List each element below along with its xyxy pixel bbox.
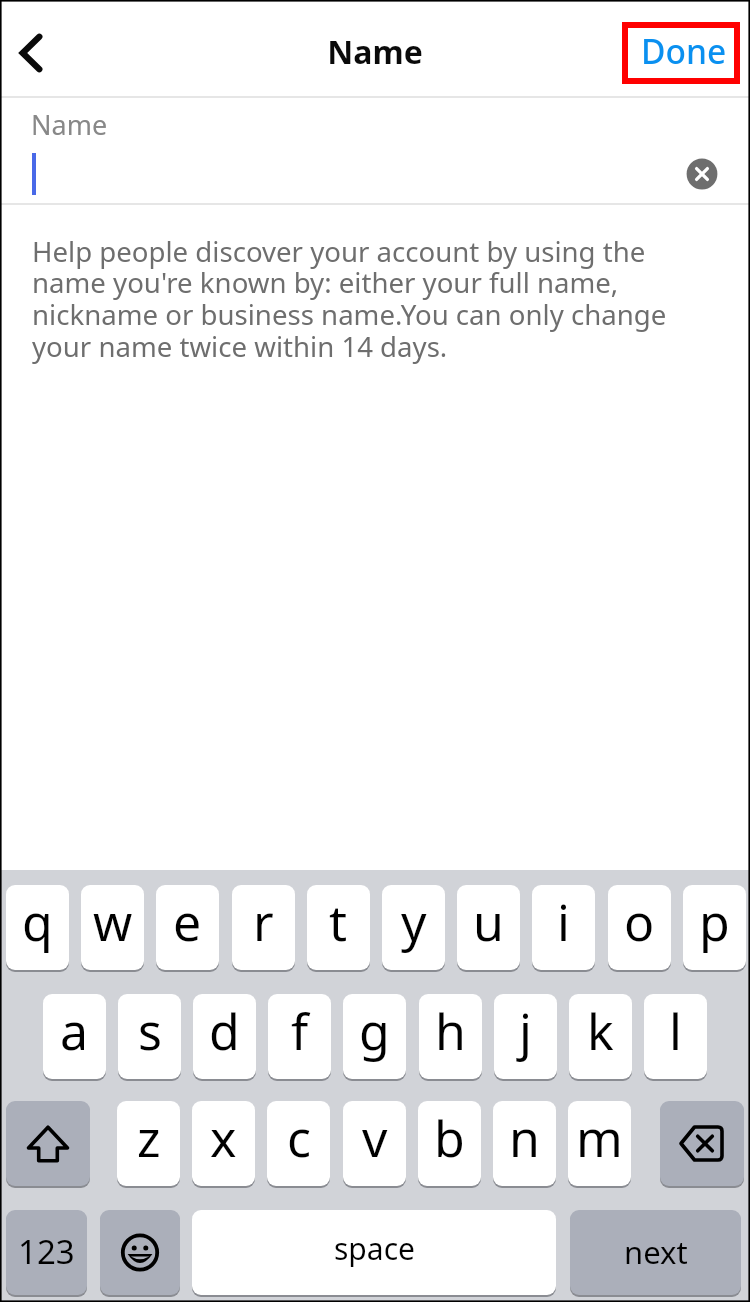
staticText: space [334, 1228, 415, 1269]
button[interactable]: p [683, 885, 746, 970]
staticText: d [209, 997, 240, 1065]
button[interactable]: Shift [6, 1101, 90, 1186]
button[interactable]: l [644, 994, 707, 1079]
staticText: s [138, 997, 162, 1065]
button[interactable]: u [457, 885, 520, 970]
staticText: Help people discover your account by usi… [32, 232, 688, 365]
button[interactable]: Clear text [679, 151, 725, 197]
button[interactable]: r [232, 885, 295, 970]
button[interactable]: d [193, 994, 256, 1079]
staticText: a [60, 997, 89, 1065]
button[interactable]: n [493, 1101, 556, 1186]
button[interactable]: i [532, 885, 595, 970]
staticText: z [137, 1104, 161, 1172]
button[interactable]: next [570, 1210, 741, 1295]
staticText: p [699, 888, 730, 956]
staticText: c [287, 1104, 311, 1172]
button[interactable]: m [568, 1101, 631, 1186]
button[interactable]: x [192, 1101, 255, 1186]
button[interactable]: 123 [6, 1210, 87, 1295]
staticText: k [587, 997, 614, 1065]
staticText: Done [641, 28, 727, 74]
button[interactable]: a [43, 994, 106, 1079]
staticText: i [557, 888, 570, 956]
button[interactable]: space [192, 1210, 556, 1295]
staticText: Name [0, 30, 750, 74]
button[interactable]: Backspace [660, 1101, 744, 1186]
staticText: e [173, 888, 202, 956]
staticText: v [362, 1104, 388, 1172]
button[interactable]: y [382, 885, 445, 970]
button[interactable]: v [343, 1101, 406, 1186]
button[interactable]: z [117, 1101, 180, 1186]
button[interactable]: s [118, 994, 181, 1079]
button[interactable]: b [418, 1101, 481, 1186]
staticText: y [401, 888, 427, 956]
button[interactable]: q [6, 885, 69, 970]
button[interactable]: k [569, 994, 632, 1079]
staticText: m [576, 1104, 623, 1172]
staticText: q [22, 888, 53, 956]
button[interactable]: Emoji [100, 1210, 180, 1295]
button[interactable]: o [608, 885, 671, 970]
staticText: r [253, 888, 274, 956]
staticText: g [359, 997, 390, 1065]
staticText: x [210, 1104, 237, 1172]
button[interactable]: w [81, 885, 144, 970]
staticText: o [624, 888, 655, 956]
staticText: n [509, 1104, 540, 1172]
button[interactable]: h [419, 994, 482, 1079]
staticText: 123 [18, 1229, 75, 1274]
button[interactable]: g [343, 994, 406, 1079]
button[interactable]: f [268, 994, 331, 1079]
button[interactable]: j [494, 994, 557, 1079]
button[interactable]: t [307, 885, 370, 970]
button[interactable]: Name text field [0, 98, 750, 203]
button[interactable]: e [156, 885, 219, 970]
button[interactable]: Back [1, 19, 61, 87]
staticText: u [473, 888, 504, 956]
staticText: t [329, 888, 348, 956]
staticText: f [291, 997, 309, 1065]
staticText: b [434, 1104, 465, 1172]
staticText: j [519, 997, 532, 1065]
staticText: Name [31, 106, 108, 143]
button[interactable]: c [267, 1101, 330, 1186]
button[interactable]: Done [622, 22, 740, 84]
staticText: l [669, 997, 682, 1065]
staticText: w [93, 888, 133, 956]
staticText: next [624, 1231, 688, 1273]
staticText: h [435, 997, 466, 1065]
